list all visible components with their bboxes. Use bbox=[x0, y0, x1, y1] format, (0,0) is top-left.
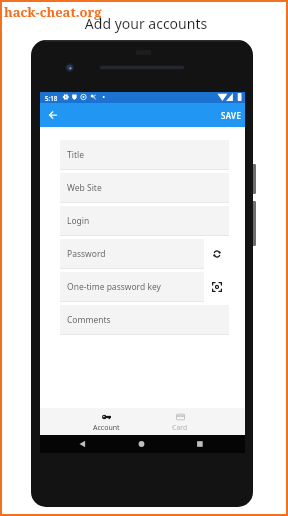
button[interactable]: Comments bbox=[60, 305, 229, 335]
button[interactable]: Password bbox=[60, 239, 204, 269]
staticText: Add your accounts bbox=[2, 14, 288, 33]
staticText: Card bbox=[172, 423, 188, 433]
button[interactable]: Account bbox=[69, 410, 143, 437]
button[interactable]: Card bbox=[143, 410, 217, 437]
button[interactable]: Login bbox=[60, 206, 229, 236]
button[interactable]: Web Site bbox=[60, 173, 229, 203]
staticText: Comments bbox=[67, 314, 111, 326]
staticText: 5:18 bbox=[45, 94, 58, 102]
staticText: Account bbox=[93, 423, 120, 433]
button[interactable]: One-time password key bbox=[60, 272, 204, 302]
button[interactable]: Back bbox=[41, 103, 65, 127]
button[interactable]: SAVE bbox=[218, 105, 245, 126]
staticText: Login bbox=[67, 215, 90, 227]
staticText: SAVE bbox=[221, 110, 242, 121]
button[interactable]: Scan QR code bbox=[206, 272, 228, 302]
staticText: One-time password key bbox=[67, 281, 161, 293]
button[interactable]: Title bbox=[60, 140, 229, 170]
staticText: Web Site bbox=[67, 182, 102, 194]
staticText: Password bbox=[67, 248, 106, 260]
button[interactable]: Generate password bbox=[206, 239, 228, 269]
staticText: Title bbox=[67, 149, 84, 161]
staticText: hack-cheat.org bbox=[4, 3, 102, 21]
